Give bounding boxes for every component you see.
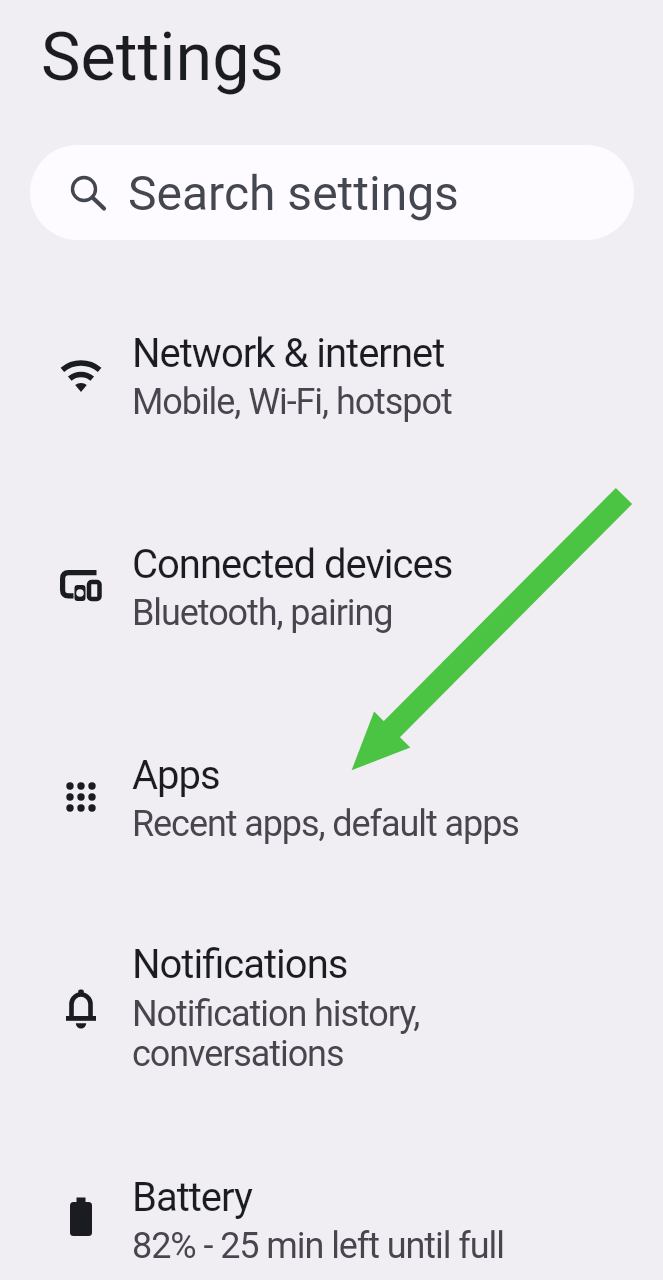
staticText: Mobile, Wi-Fi, hotspot [132, 381, 452, 423]
button[interactable]: Network & internet [0, 269, 663, 480]
staticText: Settings [41, 18, 284, 96]
staticText: Connected devices [132, 541, 453, 588]
staticText: Bluetooth, pairing [132, 592, 393, 634]
staticText: Battery [132, 1174, 252, 1221]
staticText: conversations [132, 1033, 344, 1075]
button[interactable]: Battery [0, 1113, 663, 1280]
staticText: Apps [132, 752, 220, 799]
staticText: Search settings [128, 165, 459, 221]
staticText: Notification history, [132, 993, 420, 1035]
button[interactable]: Apps [0, 691, 663, 902]
button[interactable]: Search settings [30, 145, 634, 240]
button[interactable]: Notifications [0, 902, 663, 1113]
staticText: Network & internet [132, 330, 445, 377]
staticText: Notifications [132, 941, 348, 988]
button[interactable]: Connected devices [0, 480, 663, 691]
staticText: Recent apps, default apps [132, 803, 519, 845]
staticText: 82% - 25 min left until full [132, 1225, 504, 1267]
